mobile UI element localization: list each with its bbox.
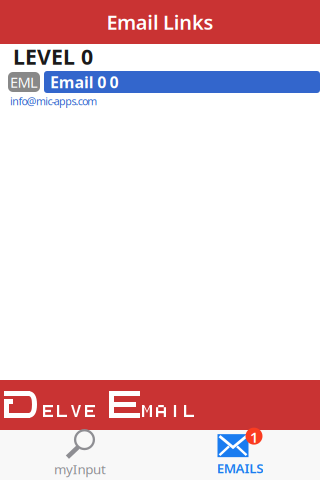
button[interactable]: myInput: [0, 430, 160, 480]
staticText: Email Links: [106, 9, 213, 35]
staticText: Email 0 0: [50, 71, 119, 93]
staticText: info@mic-apps.com: [10, 94, 97, 108]
staticText: EMAILS: [217, 459, 263, 477]
button[interactable]: Email 0 0: [44, 71, 320, 93]
button[interactable]: EML: [8, 72, 40, 92]
staticText: 1: [250, 427, 258, 447]
staticText: EML: [10, 72, 38, 92]
button[interactable]: 1: [160, 430, 320, 480]
staticText: LEVEL 0: [13, 42, 93, 71]
button[interactable]: info@mic-apps.com: [0, 93, 97, 108]
staticText: myInput: [54, 460, 106, 478]
